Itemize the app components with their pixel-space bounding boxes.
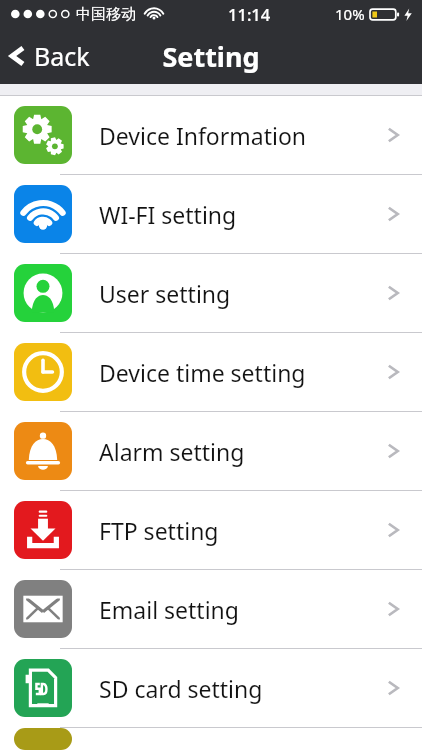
staticText: User setting — [99, 278, 380, 309]
staticText: WI-FI setting — [99, 199, 380, 230]
staticText: SD card setting — [99, 673, 380, 704]
button[interactable] — [0, 728, 422, 750]
staticText: Device time setting — [99, 357, 380, 388]
staticText: 中国移动 — [76, 5, 136, 24]
button[interactable]: SD card setting — [0, 649, 422, 727]
staticText: Device Information — [99, 120, 380, 151]
staticText: FTP setting — [99, 515, 380, 546]
button[interactable]: FTP setting — [0, 491, 422, 569]
button[interactable]: Back — [0, 31, 104, 81]
button[interactable]: Alarm setting — [0, 412, 422, 490]
button[interactable]: Email setting — [0, 570, 422, 648]
button[interactable]: WI-FI setting — [0, 175, 422, 253]
staticText: Alarm setting — [99, 436, 380, 467]
staticText: Back — [34, 39, 90, 73]
staticText: 11:14 — [228, 3, 271, 25]
button[interactable]: Device Information — [0, 96, 422, 174]
staticText: 10% — [335, 4, 365, 24]
staticText: Email setting — [99, 594, 380, 625]
staticText: Setting — [0, 38, 422, 75]
button[interactable]: User setting — [0, 254, 422, 332]
button[interactable]: Device time setting — [0, 333, 422, 411]
